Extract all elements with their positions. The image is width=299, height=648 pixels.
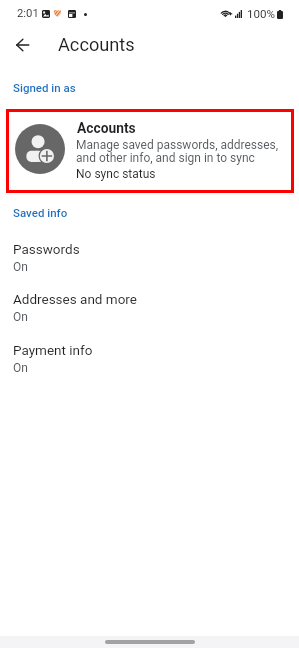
staticText: and other info, and sign in to sync [76, 151, 255, 165]
staticText: 2:01 [17, 7, 39, 20]
staticText: Payment info [13, 342, 93, 358]
staticText: Passwords [13, 241, 80, 257]
staticText: On [13, 310, 28, 324]
staticText: Manage saved passwords, addresses, [76, 138, 279, 152]
staticText: Addresses and more [13, 291, 137, 307]
staticText: No sync status [76, 167, 156, 181]
staticText: On [13, 260, 28, 274]
staticText: 100% [247, 7, 276, 21]
button[interactable]: Payment info [0, 326, 299, 376]
button[interactable]: Accounts [6, 109, 294, 193]
staticText: Saved info [13, 206, 68, 219]
button[interactable]: Back [0, 23, 45, 67]
staticText: On [13, 361, 28, 375]
staticText: Accounts [58, 34, 135, 55]
button[interactable]: Passwords [0, 225, 299, 275]
button[interactable]: Addresses and more [0, 275, 299, 325]
staticText: Signed in as [13, 81, 76, 94]
staticText: Accounts [77, 120, 136, 136]
